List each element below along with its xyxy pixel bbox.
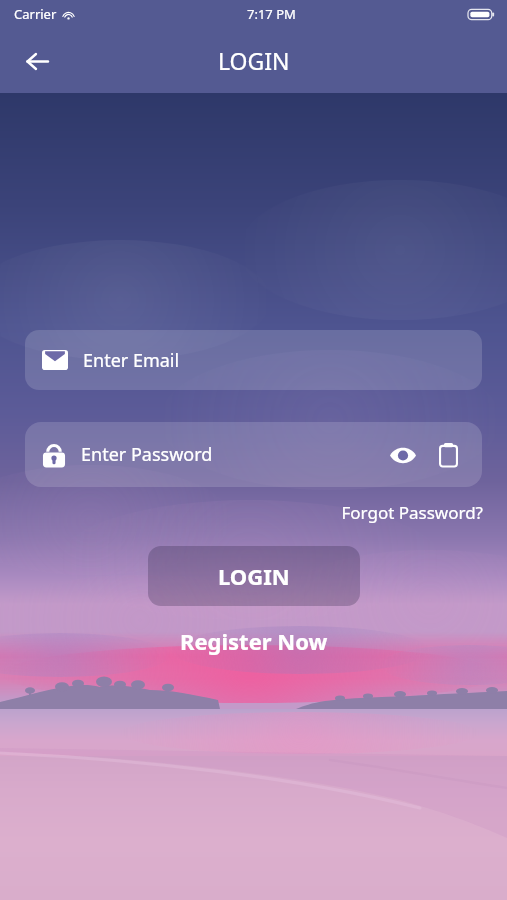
staticText: Enter Email (83, 348, 180, 373)
staticText: Carrier (14, 5, 57, 23)
staticText: Forgot Password? (341, 501, 483, 524)
button[interactable]: Paste (431, 438, 465, 472)
staticText: Enter Password (81, 442, 213, 467)
staticText: LOGIN (218, 561, 290, 591)
button[interactable]: Register Now (170, 620, 338, 662)
button[interactable]: Show password (386, 438, 420, 472)
button[interactable]: LOGIN (148, 546, 360, 606)
button[interactable]: Back (10, 34, 64, 88)
button[interactable]: Forgot Password? (337, 497, 487, 528)
staticText: 7:17 PM (247, 5, 296, 23)
button[interactable]: Enter Password (25, 422, 482, 487)
staticText: LOGIN (218, 45, 290, 76)
button[interactable]: Enter Email (25, 330, 482, 390)
staticText: Register Now (180, 626, 328, 656)
